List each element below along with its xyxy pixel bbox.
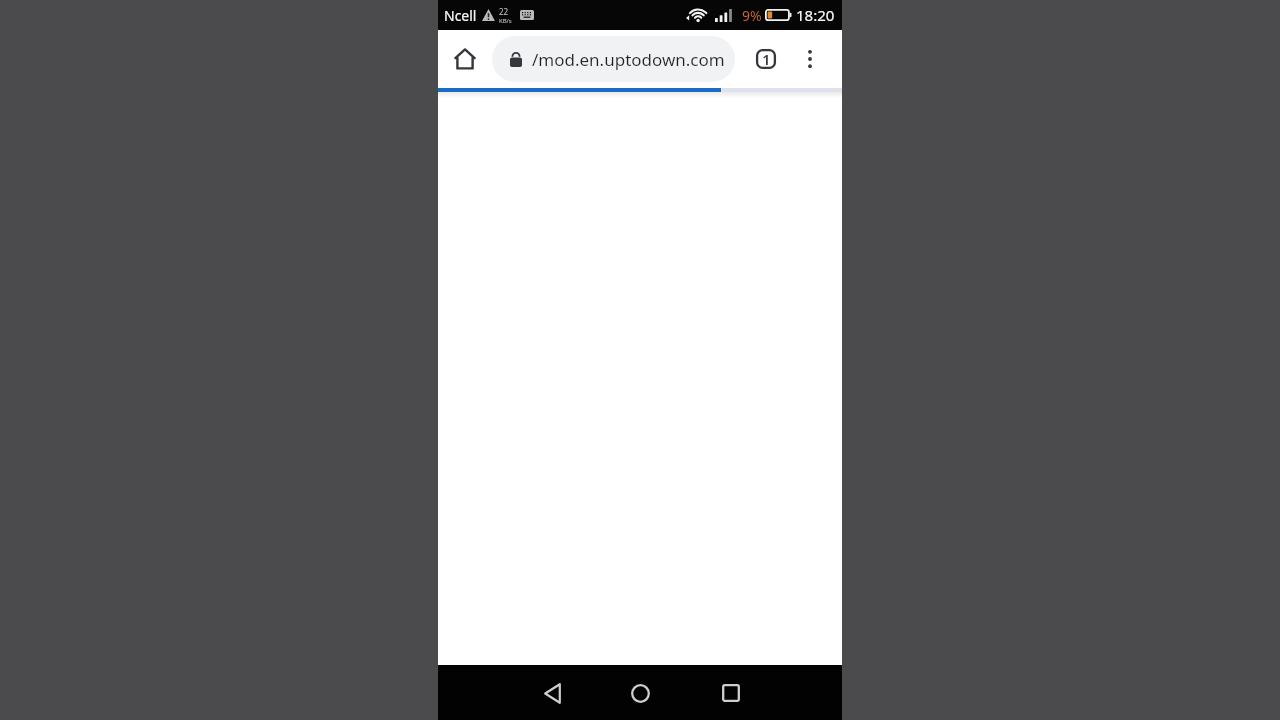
staticText: 18:20 [796,5,835,25]
button[interactable] [713,675,749,711]
button[interactable] [622,675,658,711]
button[interactable]: 1 [749,42,783,76]
staticText: KB/s [499,17,512,25]
staticText: /mod.en.uptodown.com [532,48,725,71]
staticText: 9% [742,6,762,25]
staticText: Ncell [444,6,477,25]
button[interactable]: /mod.en.uptodown.com [492,36,735,82]
button[interactable] [795,44,825,74]
staticText: 22 [499,6,509,17]
button[interactable] [448,42,482,76]
staticText: 1 [762,49,771,69]
button[interactable] [534,675,570,711]
